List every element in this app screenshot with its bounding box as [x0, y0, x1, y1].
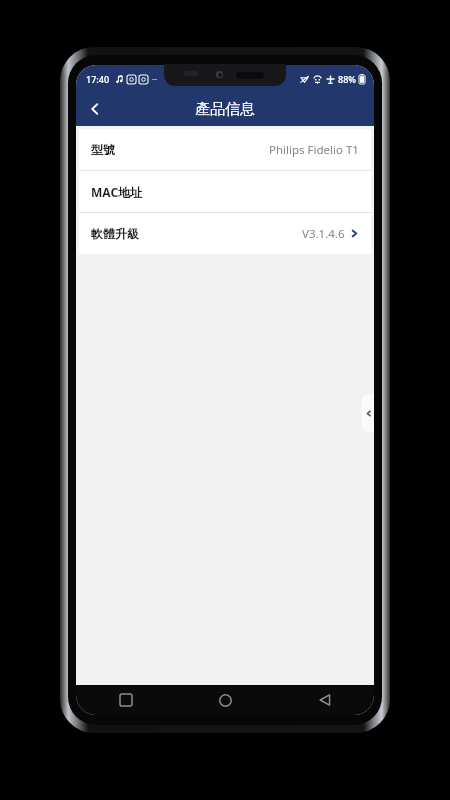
- button[interactable]: 軟體升級: [79, 213, 371, 254]
- button[interactable]: Back: [275, 685, 374, 715]
- staticText: 88%: [338, 73, 356, 85]
- staticText: 型號: [91, 142, 115, 157]
- staticText: 17:40: [86, 73, 110, 85]
- staticText: 產品信息: [195, 100, 255, 119]
- button[interactable]: Back gesture handle: [362, 394, 374, 432]
- staticText: 軟體升級: [91, 226, 139, 241]
- button[interactable]: Recent apps: [76, 685, 176, 715]
- button[interactable]: MAC地址: [79, 171, 371, 212]
- staticText: V3.1.4.6: [302, 226, 345, 242]
- button[interactable]: Home: [176, 685, 275, 715]
- button[interactable]: 型號: [79, 129, 371, 170]
- button[interactable]: Back: [76, 92, 114, 126]
- staticText: Philips Fidelio T1: [269, 142, 359, 158]
- staticText: MAC地址: [91, 184, 143, 200]
